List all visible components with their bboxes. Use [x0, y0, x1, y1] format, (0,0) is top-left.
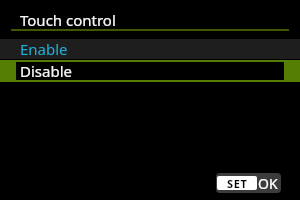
button[interactable]: Disable [0, 60, 300, 82]
staticText: Disable [20, 61, 72, 81]
staticText: OK [258, 174, 278, 193]
staticText: Enable [20, 39, 68, 59]
button[interactable]: Enable [0, 39, 300, 59]
button[interactable]: SET OK [216, 173, 281, 193]
staticText: SET [227, 176, 248, 190]
staticText: Touch control [20, 10, 116, 30]
